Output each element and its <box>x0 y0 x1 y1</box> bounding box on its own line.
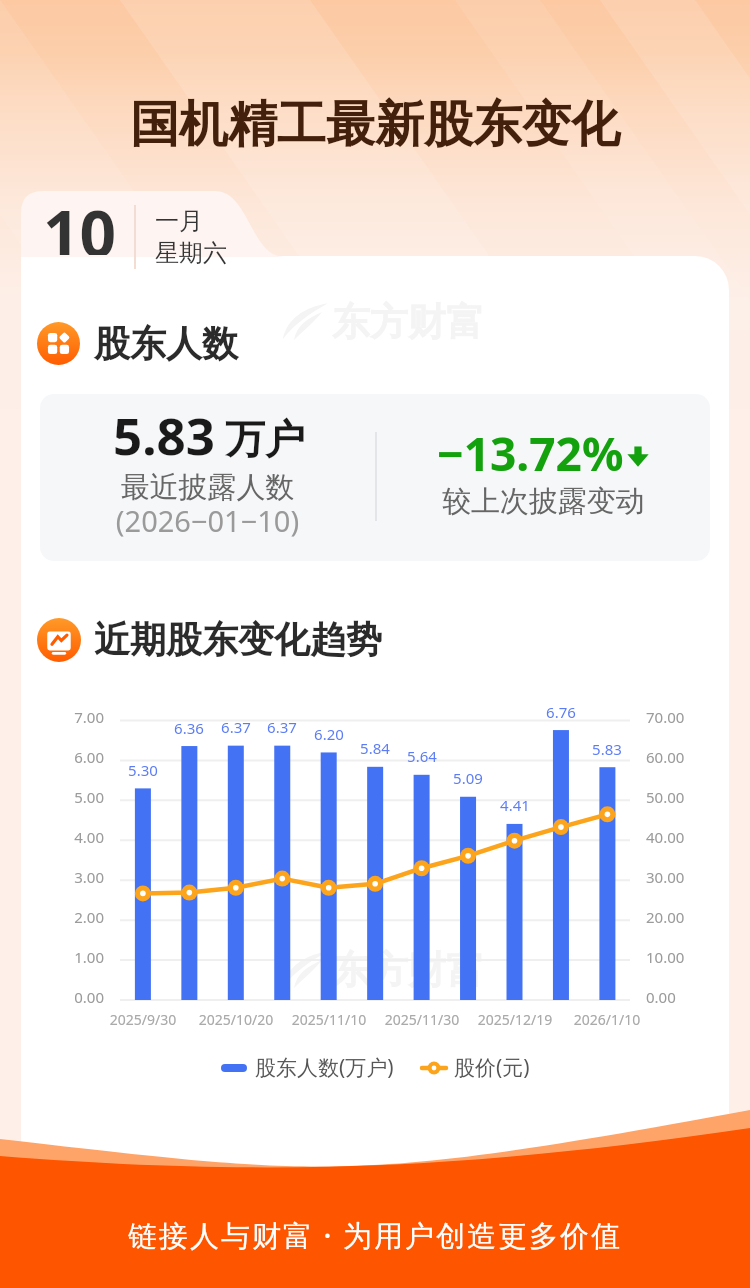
staticText: 链接人与财富 · 为用户创造更多价值 <box>0 1215 750 1255</box>
staticText: 20.00 <box>646 907 706 927</box>
staticText: 5.83 <box>577 739 637 759</box>
staticText: 星期六 <box>155 238 227 268</box>
staticText: 5.00 <box>44 787 104 807</box>
staticText: 一月 <box>155 206 203 236</box>
staticText: 2025/10/20 <box>186 1010 286 1029</box>
staticText: 10.00 <box>646 947 706 967</box>
staticText: 40.00 <box>646 827 706 847</box>
staticText: 6.20 <box>299 724 359 744</box>
staticText: 5.64 <box>392 746 452 766</box>
staticText: 0.00 <box>44 987 104 1007</box>
staticText: 6.00 <box>44 747 104 767</box>
staticText: 4.00 <box>44 827 104 847</box>
staticText: 70.00 <box>646 707 706 727</box>
staticText: 2025/12/19 <box>465 1010 565 1029</box>
staticText: 2.00 <box>44 907 104 927</box>
staticText: 6.37 <box>252 717 312 737</box>
staticText: 7.00 <box>44 707 104 727</box>
staticText: 较上次披露变动 <box>376 483 711 520</box>
other: 近期股东变化趋势 <box>37 618 81 662</box>
staticText: 50.00 <box>646 787 706 807</box>
staticText: 4.41 <box>485 795 545 815</box>
staticText: 近期股东变化趋势 <box>94 617 382 662</box>
button[interactable]: 近期股东变化趋势 <box>37 617 382 662</box>
other: 股东人数 <box>37 322 80 365</box>
staticText: 股东人数(万户) <box>255 1053 394 1082</box>
staticText: 最近披露人数 <box>40 469 375 506</box>
staticText: 东方财富 <box>332 946 484 994</box>
staticText: 10 <box>43 189 117 255</box>
staticText: 6.36 <box>159 718 219 738</box>
staticText: −13.72% <box>437 422 624 485</box>
staticText: 1.00 <box>44 947 104 967</box>
staticText: 2026/1/10 <box>557 1010 657 1029</box>
staticText: 万户 <box>225 414 305 464</box>
staticText: 2025/9/30 <box>93 1010 193 1029</box>
staticText: 6.37 <box>206 717 266 737</box>
staticText: 0.00 <box>646 987 706 1007</box>
staticText: 6.76 <box>531 702 591 722</box>
staticText: 60.00 <box>646 747 706 767</box>
staticText: 东方财富 <box>332 298 484 346</box>
button[interactable]: 10 <box>21 191 311 257</box>
staticText: 3.00 <box>44 867 104 887</box>
button[interactable]: 股东人数 <box>37 321 238 366</box>
staticText: 5.84 <box>345 738 405 758</box>
staticText: 30.00 <box>646 867 706 887</box>
staticText: 2025/11/30 <box>372 1010 472 1029</box>
button[interactable]: 股东人数(万户) <box>221 1053 394 1082</box>
button[interactable] <box>40 394 710 561</box>
staticText: 股价(元) <box>454 1053 530 1082</box>
staticText: (2026−01−10) <box>40 501 375 540</box>
staticText: 5.09 <box>438 768 498 788</box>
staticText: 股东人数 <box>94 321 238 366</box>
staticText: 5.30 <box>113 760 173 780</box>
staticText: 5.83 <box>113 400 215 469</box>
button[interactable]: 股价(元) <box>422 1053 530 1082</box>
staticText: 2025/11/10 <box>279 1010 379 1029</box>
staticText: 国机精工最新股东变化 <box>0 94 750 156</box>
